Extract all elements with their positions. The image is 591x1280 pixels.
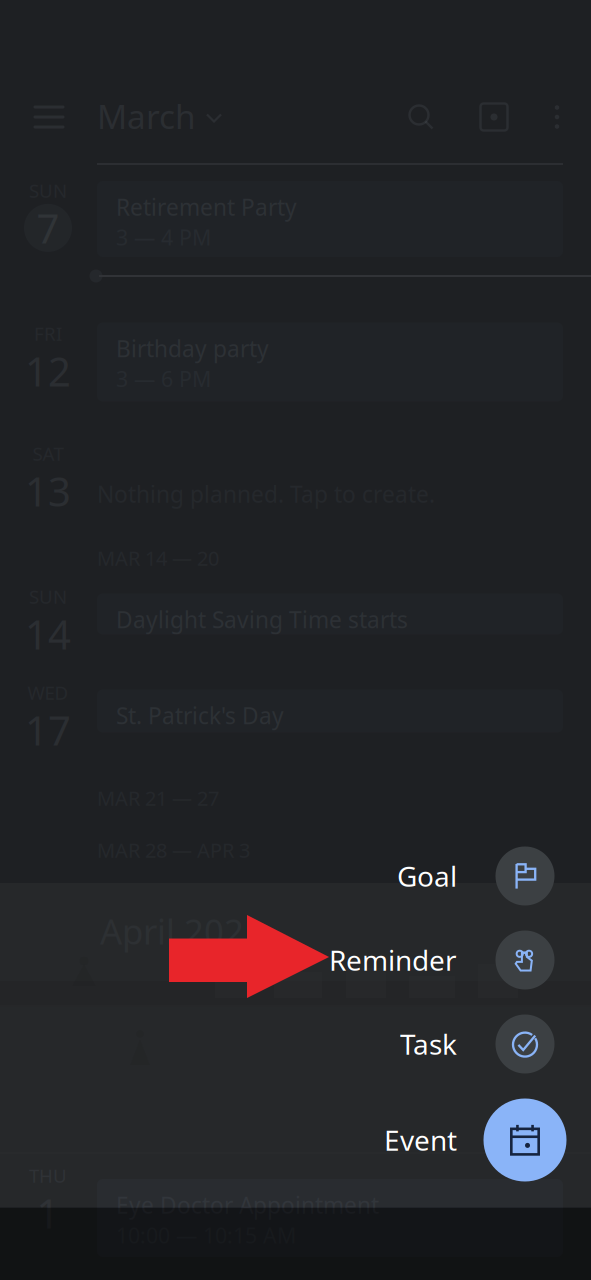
button[interactable]: Goal [0, 831, 591, 921]
staticText: Retirement Party [116, 192, 297, 222]
staticText: Eye Doctor Appointment [116, 1190, 379, 1220]
staticText: April 2021 [100, 908, 264, 954]
staticText: Event [384, 1121, 457, 1159]
staticText: THU [29, 1163, 67, 1188]
staticText: 12 [25, 344, 71, 397]
staticText: March [97, 94, 196, 138]
staticText: WED [27, 680, 68, 705]
staticText: Goal [397, 857, 457, 895]
staticText: 13 [25, 464, 71, 517]
staticText: 17 [25, 703, 71, 756]
button[interactable]: Event [0, 1095, 591, 1185]
staticText: Birthday party [116, 333, 269, 364]
staticText: 1 [36, 1186, 59, 1239]
staticText: 7 [36, 201, 59, 254]
staticText: Task [400, 1025, 457, 1063]
button[interactable]: Reminder [0, 915, 591, 1005]
staticText: Reminder [329, 941, 457, 979]
staticText: 14 [25, 607, 71, 660]
button[interactable]: Task [0, 999, 591, 1089]
staticText: St. Patrick's Day [116, 700, 284, 731]
staticText: Daylight Saving Time starts [116, 604, 408, 635]
